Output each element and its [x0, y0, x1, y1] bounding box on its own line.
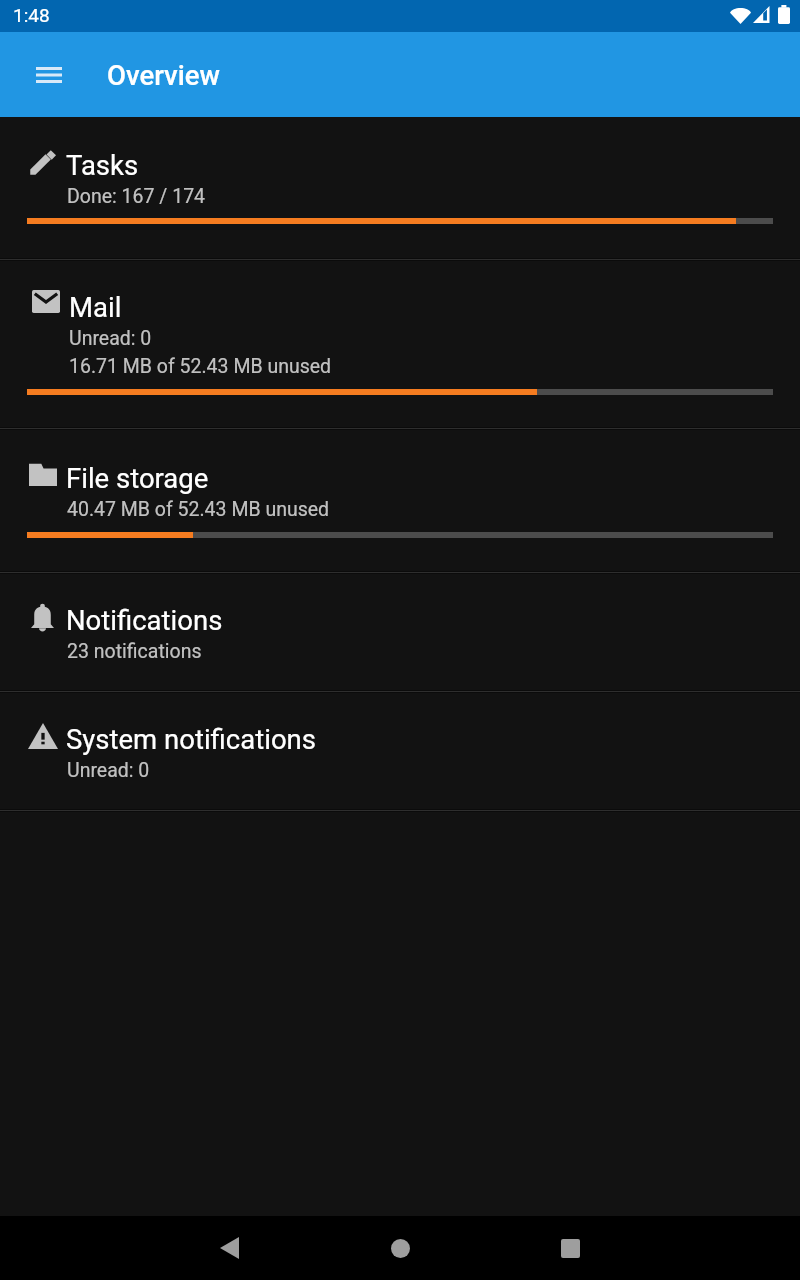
button[interactable]: Notifications — [0, 574, 800, 690]
button[interactable]: Mail — [0, 261, 800, 427]
staticText: File storage — [66, 462, 209, 494]
staticText: Mail — [69, 291, 122, 323]
staticText: Notifications — [66, 604, 223, 636]
staticText: 40.47 MB of 52.43 MB unused — [67, 498, 330, 521]
staticText: 23 notifications — [67, 640, 202, 663]
button[interactable]: File storage — [0, 430, 800, 571]
staticText: 1:48 — [13, 4, 50, 26]
button[interactable]: Home — [376, 1224, 424, 1272]
staticText: Done: 167 / 174 — [67, 185, 206, 208]
button[interactable]: System notifications — [0, 693, 800, 809]
staticText: Overview — [107, 59, 220, 91]
staticText: System notifications — [66, 723, 316, 755]
staticText: 16.71 MB of 52.43 MB unused — [69, 355, 332, 378]
button[interactable]: Open navigation drawer — [23, 49, 75, 101]
staticText: Unread: 0 — [69, 327, 152, 350]
button[interactable]: Tasks — [0, 117, 800, 258]
button[interactable]: Recent apps — [546, 1224, 594, 1272]
button[interactable]: Back — [205, 1224, 253, 1272]
staticText: Tasks — [66, 149, 139, 181]
staticText: Unread: 0 — [67, 759, 150, 782]
